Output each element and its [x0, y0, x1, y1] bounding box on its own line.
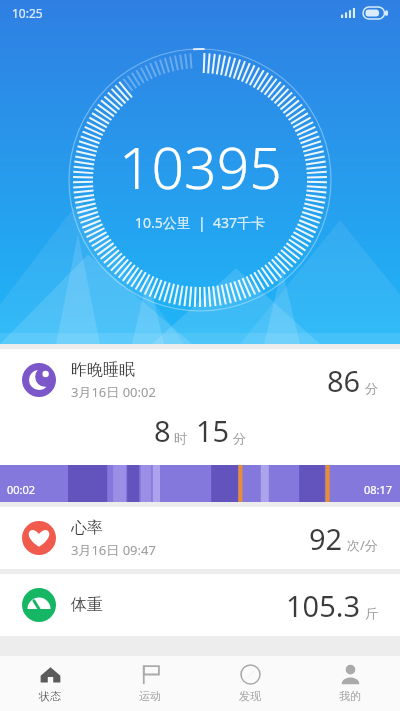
- staticText: 昨晚睡眠: [71, 360, 135, 380]
- button[interactable]: Steps today: [0, 0, 400, 344]
- staticText: 10395: [119, 128, 282, 206]
- staticText: 105.3: [286, 586, 361, 625]
- staticText: 10:25: [12, 5, 43, 21]
- staticText: 92: [309, 519, 343, 558]
- staticText: 状态: [39, 689, 61, 703]
- staticText: 次/分: [347, 536, 378, 554]
- staticText: 心率: [71, 518, 103, 538]
- staticText: 08:17: [364, 482, 393, 497]
- staticText: 10.5公里 | 437千卡: [135, 213, 266, 232]
- button[interactable]: 状态: [0, 656, 100, 711]
- button[interactable]: 发现: [200, 656, 300, 711]
- staticText: 86: [327, 361, 361, 400]
- staticText: 分: [233, 430, 246, 446]
- staticText: 运动: [139, 689, 161, 703]
- staticText: 分: [365, 380, 378, 396]
- button[interactable]: 昨晚睡眠: [0, 349, 400, 502]
- staticText: 3月16日 00:02: [71, 383, 156, 401]
- staticText: 我的: [339, 689, 361, 703]
- staticText: 时: [174, 430, 187, 446]
- button[interactable]: 运动: [100, 656, 200, 711]
- button[interactable]: 体重: [0, 574, 400, 636]
- staticText: 体重: [71, 595, 103, 615]
- staticText: 3月16日 09:47: [71, 541, 156, 559]
- staticText: 斤: [365, 605, 378, 621]
- staticText: 15: [196, 411, 230, 450]
- staticText: 00:02: [7, 482, 36, 497]
- button[interactable]: 我的: [300, 656, 400, 711]
- button[interactable]: 心率: [0, 507, 400, 569]
- staticText: 发现: [239, 689, 261, 703]
- staticText: 8: [154, 411, 171, 450]
